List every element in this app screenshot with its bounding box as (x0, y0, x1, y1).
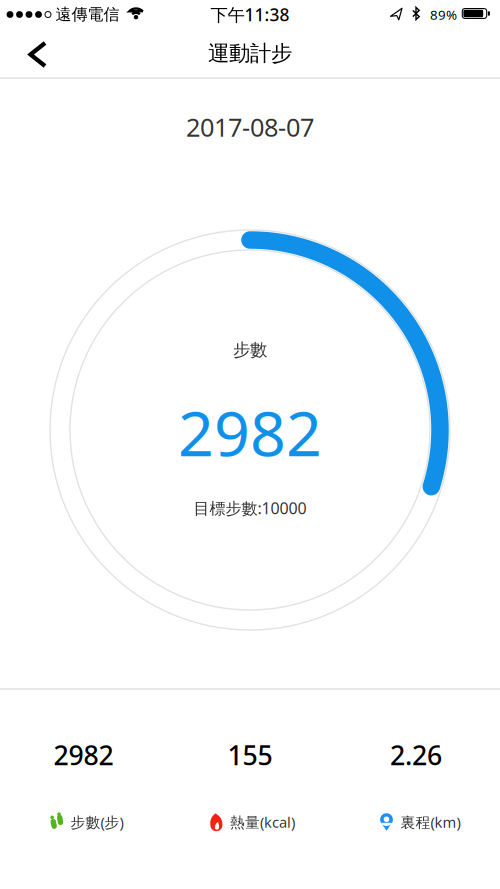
staticText: 2017-08-07 (186, 110, 314, 144)
button[interactable]: Back (5, 29, 61, 79)
staticText: 目標步數:10000 (193, 497, 306, 519)
staticText: 步數 (233, 339, 267, 361)
staticText: 155 (227, 737, 272, 773)
staticText: 下午11:38 (210, 3, 289, 26)
staticText: 2982 (53, 737, 113, 773)
staticText: 89% (430, 6, 457, 23)
staticText: 步數(步) (70, 812, 123, 832)
staticText: 熱量(kcal) (230, 812, 295, 832)
staticText: 遠傳電信 (55, 5, 119, 24)
staticText: 運動計步 (208, 40, 292, 67)
staticText: 2.26 (390, 737, 442, 773)
staticText: 裏程(km) (400, 812, 460, 832)
staticText: 2982 (178, 390, 322, 474)
